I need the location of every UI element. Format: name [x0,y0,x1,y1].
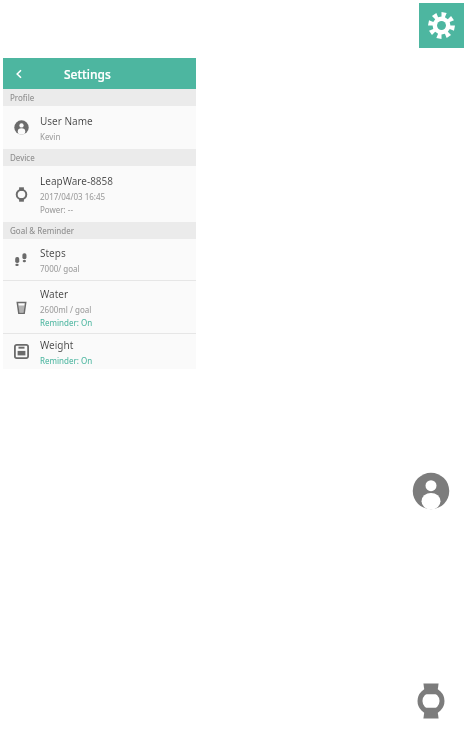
staticText: Water [40,287,69,301]
staticText: Reminder: On [40,355,93,366]
staticText: Goal & Reminder [10,225,74,236]
staticText: LeapWare-8858 [40,174,114,188]
staticText: Settings [64,66,111,82]
staticText: Profile [10,92,35,103]
button[interactable]: Water [3,281,196,333]
staticText: 2600ml / goal [40,304,92,315]
button[interactable]: Device [397,671,464,730]
staticText: Reminder: On [40,317,93,328]
staticText: Steps [40,246,66,260]
staticText: 2017/04/03 16:45 [40,191,106,202]
staticText: 7000/ goal [40,263,80,274]
button[interactable]: Profile [397,461,464,520]
staticText: Weight [40,338,74,352]
button[interactable]: Settings [419,3,464,48]
button[interactable]: Weight [3,334,196,369]
staticText: Kevin [40,131,61,142]
staticText: User Name [40,114,93,128]
button[interactable]: LeapWare-8858 [3,166,196,222]
button[interactable]: Back [3,58,35,89]
button[interactable]: Steps [3,239,196,280]
button[interactable]: User Name [3,106,196,149]
staticText: Device [10,152,35,163]
staticText: Power: -- [40,204,73,215]
